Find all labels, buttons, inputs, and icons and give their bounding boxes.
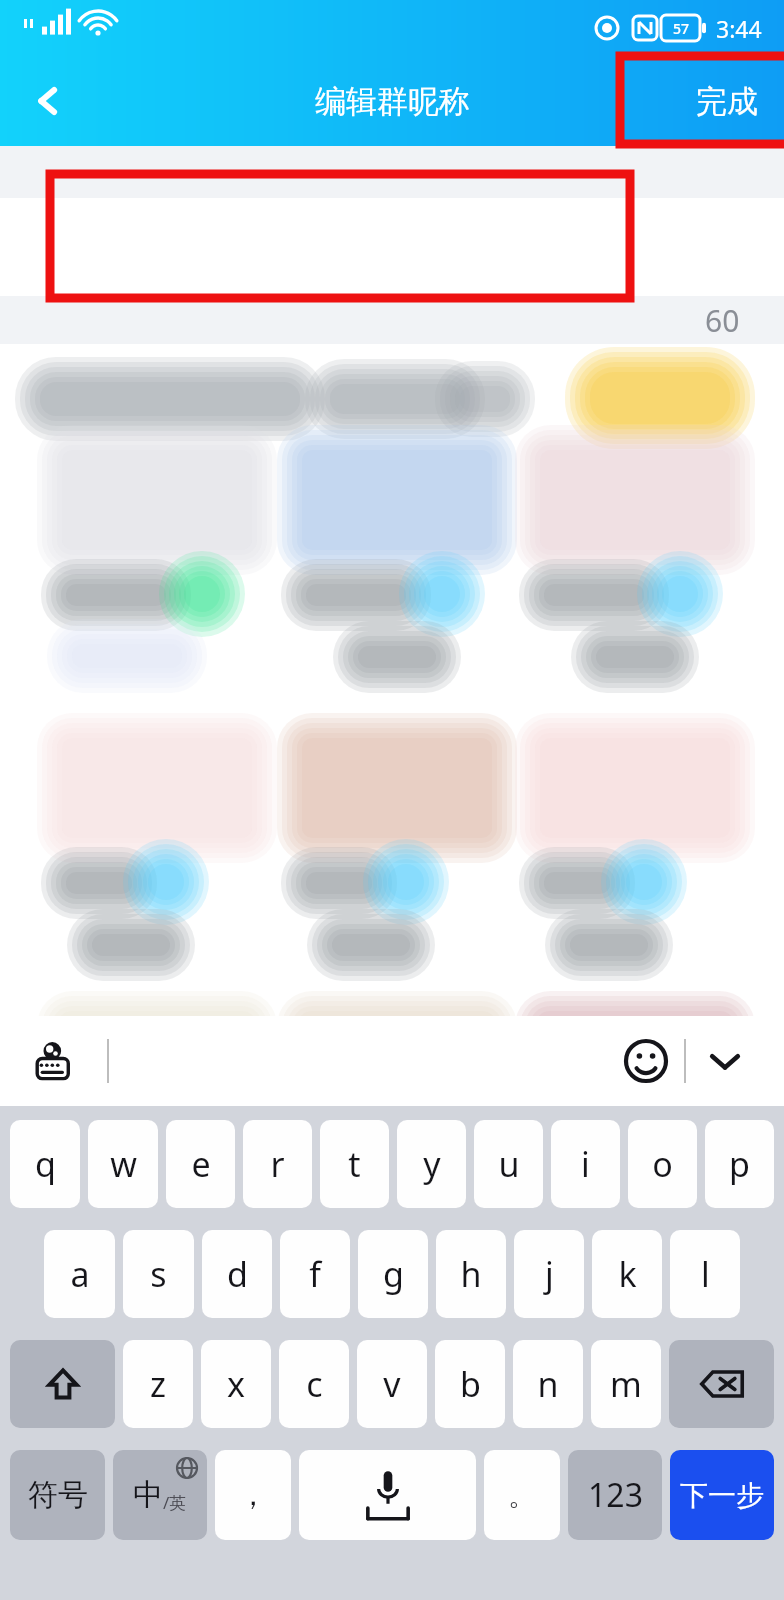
button[interactable]: a (44, 1230, 115, 1318)
staticText: d (227, 1251, 248, 1297)
button[interactable]: m (591, 1340, 661, 1428)
button[interactable]: c (279, 1340, 349, 1428)
button[interactable]: e (166, 1120, 235, 1208)
staticText: 完成 (696, 82, 758, 121)
button[interactable]: q (10, 1120, 80, 1208)
button[interactable]: r (243, 1120, 312, 1208)
staticText: p (729, 1141, 750, 1187)
button[interactable] (299, 1450, 476, 1540)
button[interactable] (669, 1340, 774, 1428)
staticText: v (383, 1361, 401, 1407)
button[interactable]: p (705, 1120, 774, 1208)
button[interactable]: s (123, 1230, 194, 1318)
button[interactable]: k (592, 1230, 662, 1318)
button[interactable]: w (88, 1120, 158, 1208)
button[interactable]: Switch input method (18, 1025, 90, 1097)
staticText: 123 (588, 1473, 643, 1517)
button[interactable]: n (513, 1340, 583, 1428)
staticText: t (348, 1141, 361, 1187)
staticText: b (460, 1361, 481, 1407)
staticText: f (309, 1251, 321, 1297)
button[interactable]: 123 (568, 1450, 662, 1540)
staticText: 57 (673, 19, 690, 38)
button[interactable]: j (514, 1230, 584, 1318)
button[interactable]: l (670, 1230, 740, 1318)
staticText: ， (238, 1476, 268, 1514)
button[interactable]: v (357, 1340, 427, 1428)
button[interactable]: Back (0, 56, 96, 146)
button[interactable]: y (397, 1120, 466, 1208)
staticText: w (110, 1141, 137, 1187)
button[interactable]: h (436, 1230, 506, 1318)
staticText: k (618, 1251, 637, 1297)
staticText: z (150, 1361, 166, 1407)
button[interactable]: b (435, 1340, 505, 1428)
button[interactable] (10, 1340, 115, 1428)
staticText: y (423, 1141, 441, 1187)
staticText: m (610, 1361, 642, 1407)
button[interactable]: d (202, 1230, 272, 1318)
staticText: r (270, 1141, 285, 1187)
staticText: h (460, 1251, 482, 1297)
staticText: q (35, 1141, 56, 1187)
button[interactable]: 完成 (696, 56, 758, 146)
button[interactable]: x (201, 1340, 271, 1428)
button[interactable]: t (320, 1120, 389, 1208)
staticText: /英 (163, 1491, 187, 1514)
staticText: a (70, 1251, 90, 1297)
button[interactable] (0, 198, 784, 296)
button[interactable]: o (628, 1120, 697, 1208)
staticText: g (383, 1251, 404, 1297)
staticText: n (537, 1361, 559, 1407)
staticText: i (581, 1141, 590, 1187)
button[interactable]: i (551, 1120, 620, 1208)
button[interactable]: f (280, 1230, 350, 1318)
button[interactable]: Emoji (607, 1022, 685, 1100)
button[interactable]: ， (215, 1450, 291, 1540)
button[interactable]: 中 (113, 1450, 207, 1540)
button[interactable]: 符号 (10, 1450, 105, 1540)
staticText: u (498, 1141, 520, 1187)
button[interactable]: g (358, 1230, 428, 1318)
staticText: c (306, 1361, 323, 1407)
button[interactable]: u (474, 1120, 543, 1208)
button[interactable]: 。 (484, 1450, 560, 1540)
staticText: x (227, 1361, 245, 1407)
button[interactable]: z (123, 1340, 193, 1428)
staticText: o (652, 1141, 673, 1187)
button[interactable]: 下一步 (670, 1450, 774, 1540)
staticText: s (150, 1251, 167, 1297)
staticText: 。 (508, 1478, 536, 1513)
staticText: 3:44 (716, 13, 762, 44)
staticText: l (701, 1251, 710, 1297)
staticText: 中 (133, 1476, 163, 1514)
staticText: 下一步 (680, 1478, 764, 1513)
staticText: j (545, 1251, 554, 1297)
staticText: 编辑群昵称 (315, 82, 470, 121)
staticText: 60 (705, 300, 740, 341)
staticText: e (191, 1141, 211, 1187)
button[interactable]: Hide keyboard (686, 1022, 764, 1100)
staticText: 符号 (28, 1476, 88, 1514)
